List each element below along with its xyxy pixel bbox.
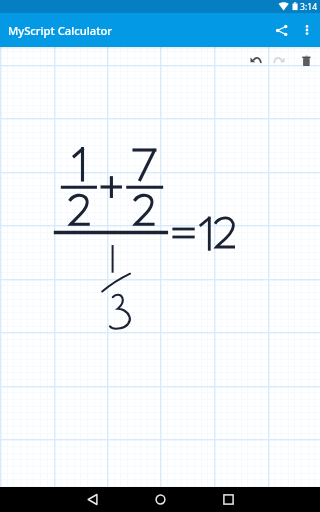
button[interactable]: Redo [267,47,293,73]
button[interactable]: Writing area [0,73,320,512]
button[interactable]: Undo [241,47,267,73]
button[interactable]: Share [266,15,296,45]
button[interactable]: Back [69,487,115,512]
button[interactable]: Home [137,487,183,512]
button[interactable]: More options [295,18,319,42]
staticText: MyScript Calculator [8,23,113,38]
button[interactable]: Delete [293,47,319,73]
button[interactable]: Recent apps [205,487,251,512]
staticText: 3:14 [300,1,318,13]
